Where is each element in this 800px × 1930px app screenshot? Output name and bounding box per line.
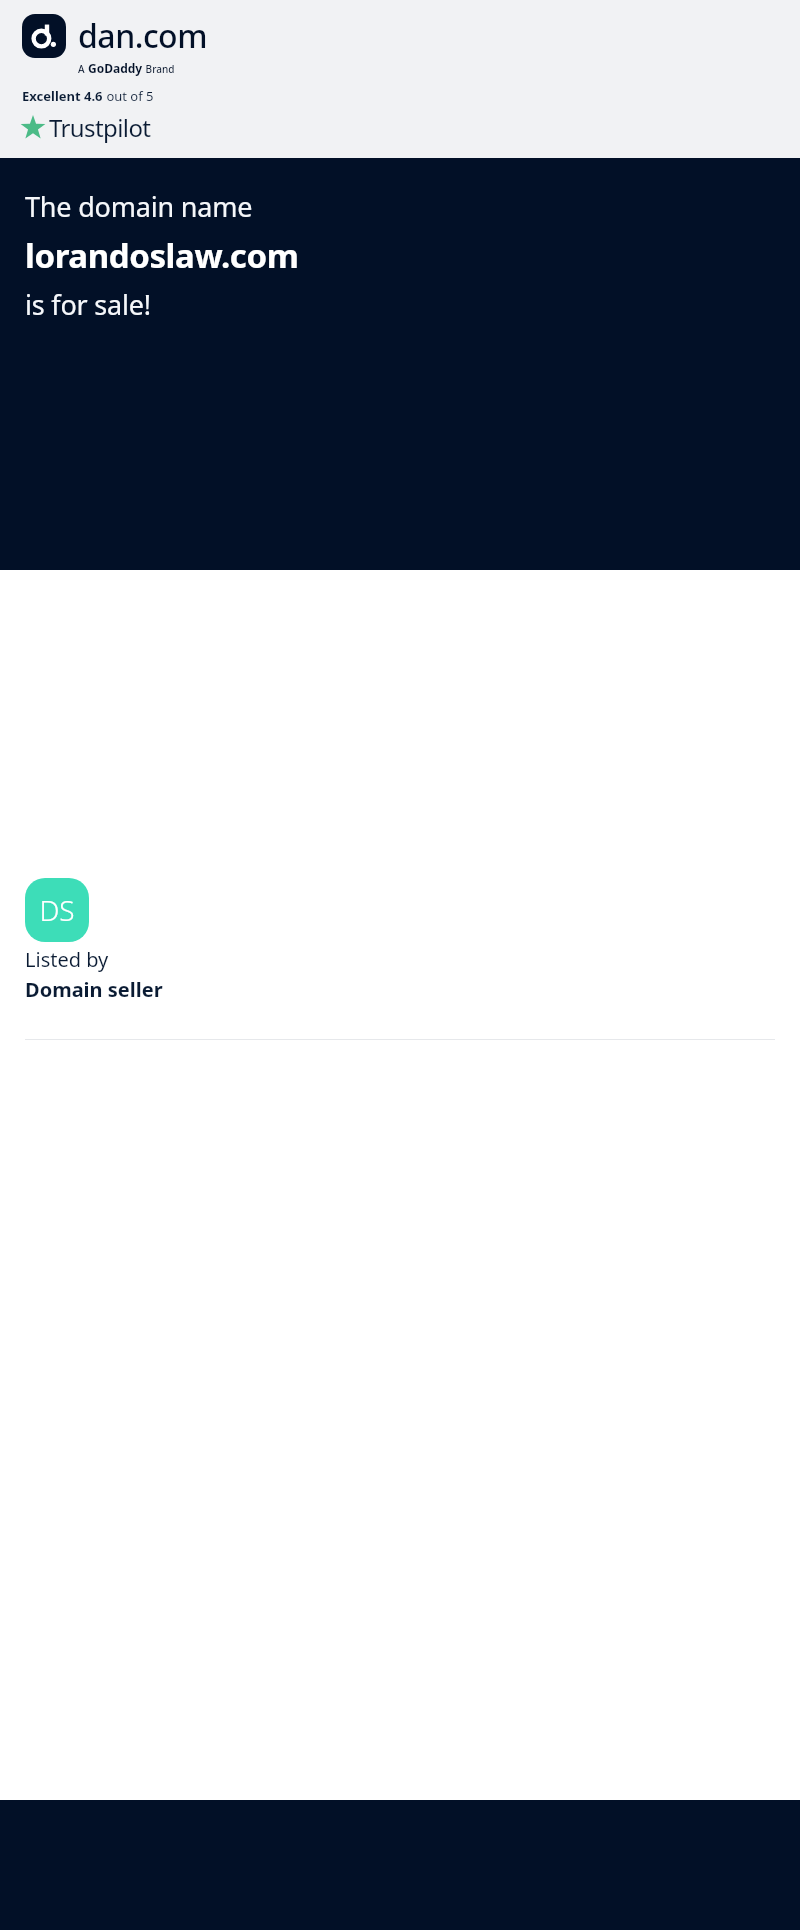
staticText: The domain name <box>25 188 253 225</box>
staticText: Excellent 4.6 <box>22 87 103 105</box>
staticText: is for sale! <box>25 286 151 323</box>
staticText: A <box>78 62 88 76</box>
staticText: GoDaddy <box>88 60 143 76</box>
button[interactable]: Trustpilot <box>20 111 151 144</box>
staticText: dan.com <box>78 14 207 58</box>
staticText: Listed by <box>25 946 109 973</box>
staticText: Trustpilot <box>49 111 151 144</box>
staticText: Domain seller <box>25 976 163 1003</box>
button[interactable]: dan.com <box>22 14 207 58</box>
staticText: lorandoslaw.com <box>25 233 299 278</box>
button[interactable]: DS <box>0 878 800 1003</box>
staticText: DS <box>39 891 75 929</box>
staticText: Brand <box>143 62 175 76</box>
staticText: out of 5 <box>103 87 154 105</box>
